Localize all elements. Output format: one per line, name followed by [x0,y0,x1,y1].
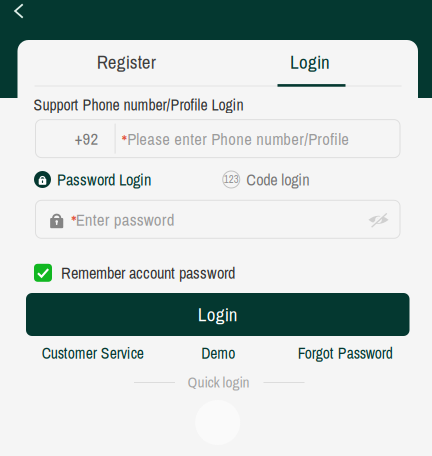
button[interactable]: Show password [363,205,393,235]
button[interactable]: 123 [223,166,309,192]
staticText: 123 [224,172,239,186]
button[interactable]: Login [26,293,409,336]
button[interactable]: Demo [201,340,235,366]
staticText: Enter password [76,208,175,231]
button[interactable]: Forgot Password [298,340,393,366]
staticText: Demo [201,342,235,363]
staticText: Support Phone number/Profile Login [33,94,243,115]
staticText: Login [290,49,330,75]
button[interactable]: Customer Service [42,340,144,366]
staticText: +92 [74,127,98,150]
staticText: * [71,210,77,234]
staticText: Code login [246,168,309,190]
staticText: Login [198,302,238,327]
staticText: Customer Service [42,342,144,363]
button[interactable]: Login [218,39,401,84]
button[interactable]: Remember account password [34,260,235,286]
staticText: Please enter Phone number/Profile [127,128,349,150]
button[interactable]: Password Login [34,166,151,192]
staticText: Remember account password [61,262,235,284]
staticText: Quick login [187,372,249,392]
button[interactable]: Back [2,0,36,27]
staticText: Forgot Password [298,342,393,363]
staticText: * [121,130,127,154]
staticText: Register [97,49,156,75]
staticText: Password Login [57,168,151,190]
button[interactable]: Register [35,39,218,84]
